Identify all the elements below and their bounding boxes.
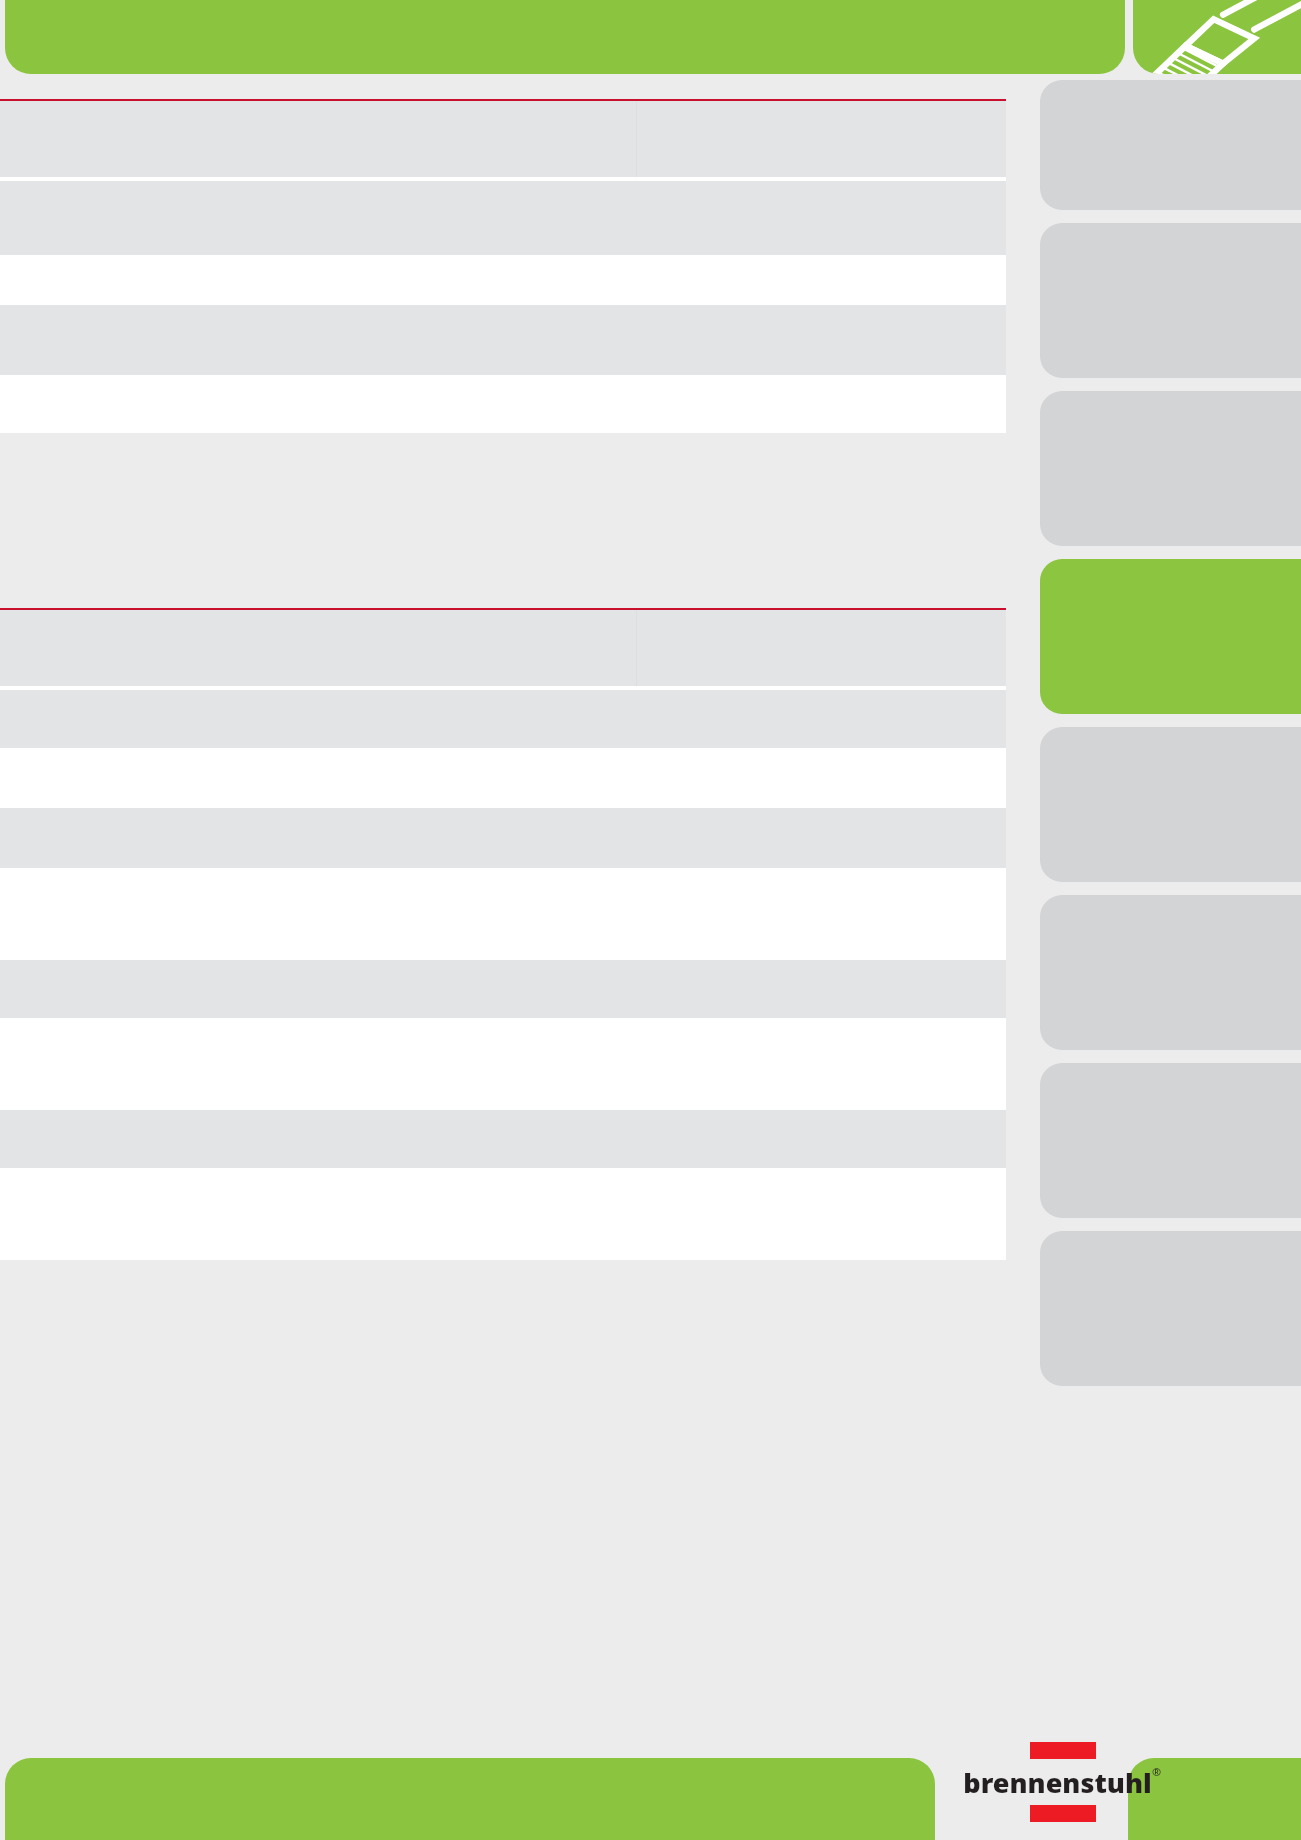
button[interactable] [5,0,1125,74]
button[interactable]: Plug category [1133,0,1301,74]
button[interactable]: Category tab 4 [1040,559,1301,714]
button[interactable] [1128,1758,1301,1840]
button[interactable] [5,1758,935,1840]
staticText: ® [1152,1764,1162,1779]
other: brennenstuhl logo [963,1742,1162,1822]
staticText: brennenstuhl [963,1764,1152,1801]
